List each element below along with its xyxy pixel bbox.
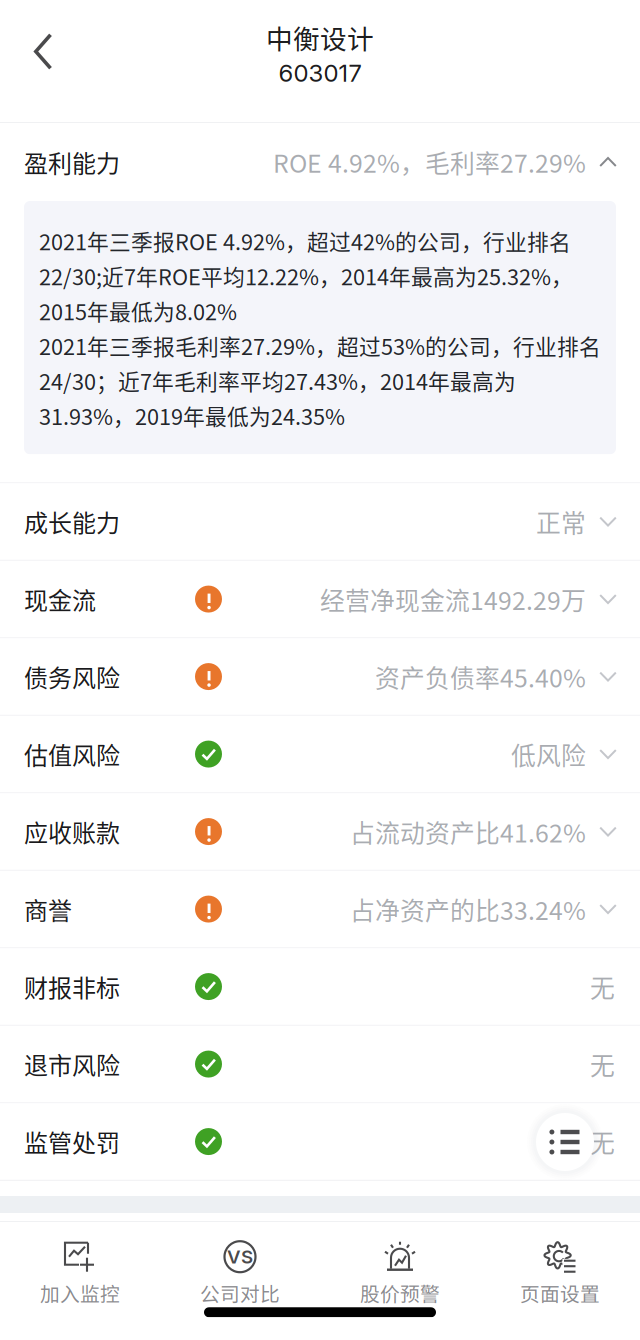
button[interactable]: 成长能力 (0, 483, 640, 561)
button[interactable]: VS (160, 1240, 320, 1307)
staticText: 中衡设计 (266, 18, 374, 57)
staticText: VS (227, 1245, 253, 1268)
staticText: 退市风险 (24, 1047, 120, 1081)
staticText: 2021年三季报毛利率27.29%，超过53%的公司，行业排名24/30；近7年… (39, 330, 601, 431)
staticText: 盈利能力 (24, 145, 120, 179)
button[interactable]: 盈利能力 (0, 123, 640, 201)
staticText: 财报非标 (24, 969, 120, 1004)
staticText: 应收账款 (24, 814, 120, 849)
staticText: 债务风险 (24, 659, 120, 694)
staticText: 603017 (278, 59, 361, 88)
staticText: 无 (590, 1124, 615, 1159)
button[interactable]: 财报非标 (0, 948, 640, 1026)
staticText: 无 (590, 1046, 615, 1082)
staticText: 低风险 (511, 736, 586, 772)
staticText: 占流动资产比41.62% (350, 814, 586, 849)
staticText: 股价预警 (360, 1279, 440, 1307)
staticText: 估值风险 (24, 737, 120, 771)
button[interactable]: 债务风险 (0, 638, 640, 716)
button[interactable]: 退市风险 (0, 1026, 640, 1103)
staticText: 加入监控 (40, 1279, 120, 1307)
staticText: 经营净现金流1492.29万 (320, 581, 586, 617)
staticText: 资产负债率45.40% (375, 659, 586, 694)
staticText: 无 (590, 969, 615, 1004)
staticText: 商誉 (24, 892, 72, 926)
button[interactable]: Back (0, 0, 76, 94)
button[interactable]: 商誉 (0, 871, 640, 948)
staticText: 监管处罚 (24, 1124, 120, 1159)
staticText: 页面设置 (520, 1279, 600, 1307)
button[interactable]: 监管处罚 (0, 1103, 640, 1181)
button[interactable]: 应收账款 (0, 793, 640, 871)
staticText: ROE 4.92%，毛利率27.29% (273, 144, 586, 180)
staticText: 公司对比 (200, 1279, 280, 1307)
staticText: 正常 (536, 504, 586, 539)
button[interactable]: 股价预警 (320, 1240, 480, 1307)
button[interactable]: 页面设置 (480, 1240, 640, 1307)
staticText: 2021年三季报ROE 4.92%，超过42%的公司，行业排名22/30;近7年… (39, 225, 573, 326)
button[interactable]: 估值风险 (0, 716, 640, 793)
staticText: 现金流 (24, 582, 96, 616)
button[interactable]: 加入监控 (0, 1240, 160, 1307)
button[interactable]: 现金流 (0, 561, 640, 638)
staticText: 成长能力 (24, 504, 120, 539)
button[interactable]: List view (525, 1102, 605, 1182)
staticText: 占净资产的比33.24% (350, 891, 586, 927)
